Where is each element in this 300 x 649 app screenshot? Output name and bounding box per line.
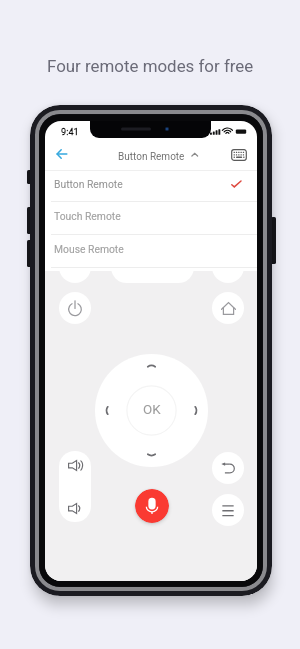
button[interactable] [127, 386, 177, 436]
button[interactable]: Home [212, 292, 244, 324]
staticText: 9:41 [61, 126, 79, 137]
button[interactable] [212, 251, 244, 283]
button[interactable]: Touch Remote [45, 202, 257, 235]
staticText: OK [143, 402, 161, 418]
button[interactable]: Volume up [59, 451, 91, 487]
button[interactable]: Menu [212, 494, 244, 526]
button[interactable]: Voice [135, 489, 169, 523]
button[interactable]: Back [212, 452, 244, 484]
staticText: Mouse Remote [54, 243, 124, 255]
button[interactable]: Volume down [59, 487, 91, 522]
button[interactable]: Numbers [111, 251, 194, 283]
button[interactable]: Keyboard [226, 142, 252, 168]
button[interactable]: Power [59, 292, 91, 324]
button[interactable]: Button Remote [45, 171, 257, 202]
staticText: Four remote modes for free [47, 56, 254, 76]
staticText: Touch Remote [54, 210, 121, 222]
staticText: Button Remote [54, 178, 123, 190]
button[interactable] [59, 251, 91, 283]
staticText: Button Remote [118, 151, 185, 163]
button[interactable]: Mouse Remote [45, 235, 257, 268]
button[interactable]: Back [50, 142, 74, 166]
